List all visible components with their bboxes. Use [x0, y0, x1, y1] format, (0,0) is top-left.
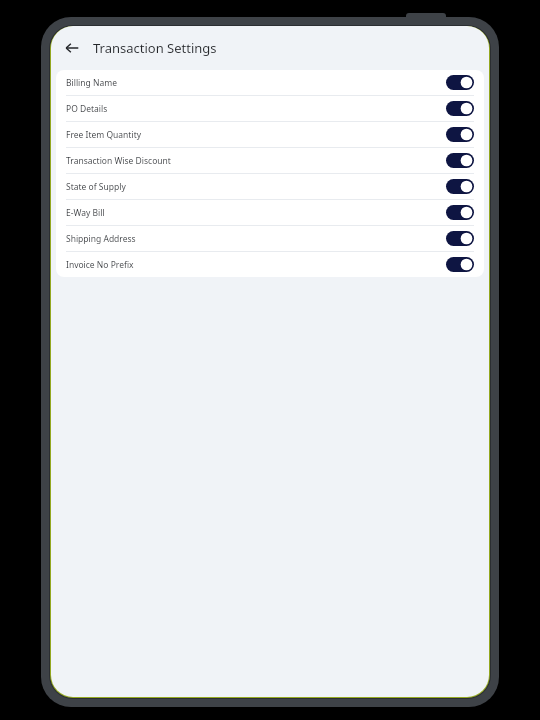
button[interactable]: Toggle	[446, 75, 474, 90]
button[interactable]: Toggle	[446, 153, 474, 168]
button[interactable]: Shipping Address	[56, 226, 484, 251]
staticText: Invoice No Prefix	[66, 259, 134, 271]
button[interactable]: Toggle	[446, 101, 474, 116]
staticText: E-Way Bill	[66, 207, 105, 219]
button[interactable]: Invoice No Prefix	[56, 252, 484, 277]
button[interactable]: Free Item Quantity	[56, 122, 484, 147]
staticText: Billing Name	[66, 77, 117, 89]
staticText: State of Supply	[66, 181, 126, 193]
button[interactable]: Transaction Wise Discount	[56, 148, 484, 173]
button[interactable]: PO Details	[56, 96, 484, 121]
button[interactable]: Toggle	[446, 179, 474, 194]
button[interactable]: State of Supply	[56, 174, 484, 199]
button[interactable]: Toggle	[446, 231, 474, 246]
button[interactable]: Toggle	[446, 205, 474, 220]
button[interactable]: Toggle	[446, 127, 474, 142]
button[interactable]: Toggle	[446, 257, 474, 272]
button[interactable]: E-Way Bill	[56, 200, 484, 225]
button[interactable]: Billing Name	[56, 70, 484, 95]
staticText: Free Item Quantity	[66, 129, 142, 141]
staticText: Transaction Settings	[93, 39, 217, 57]
staticText: Transaction Wise Discount	[66, 155, 171, 167]
staticText: PO Details	[66, 103, 108, 115]
staticText: Shipping Address	[66, 233, 136, 245]
button[interactable]: Back	[59, 35, 85, 61]
